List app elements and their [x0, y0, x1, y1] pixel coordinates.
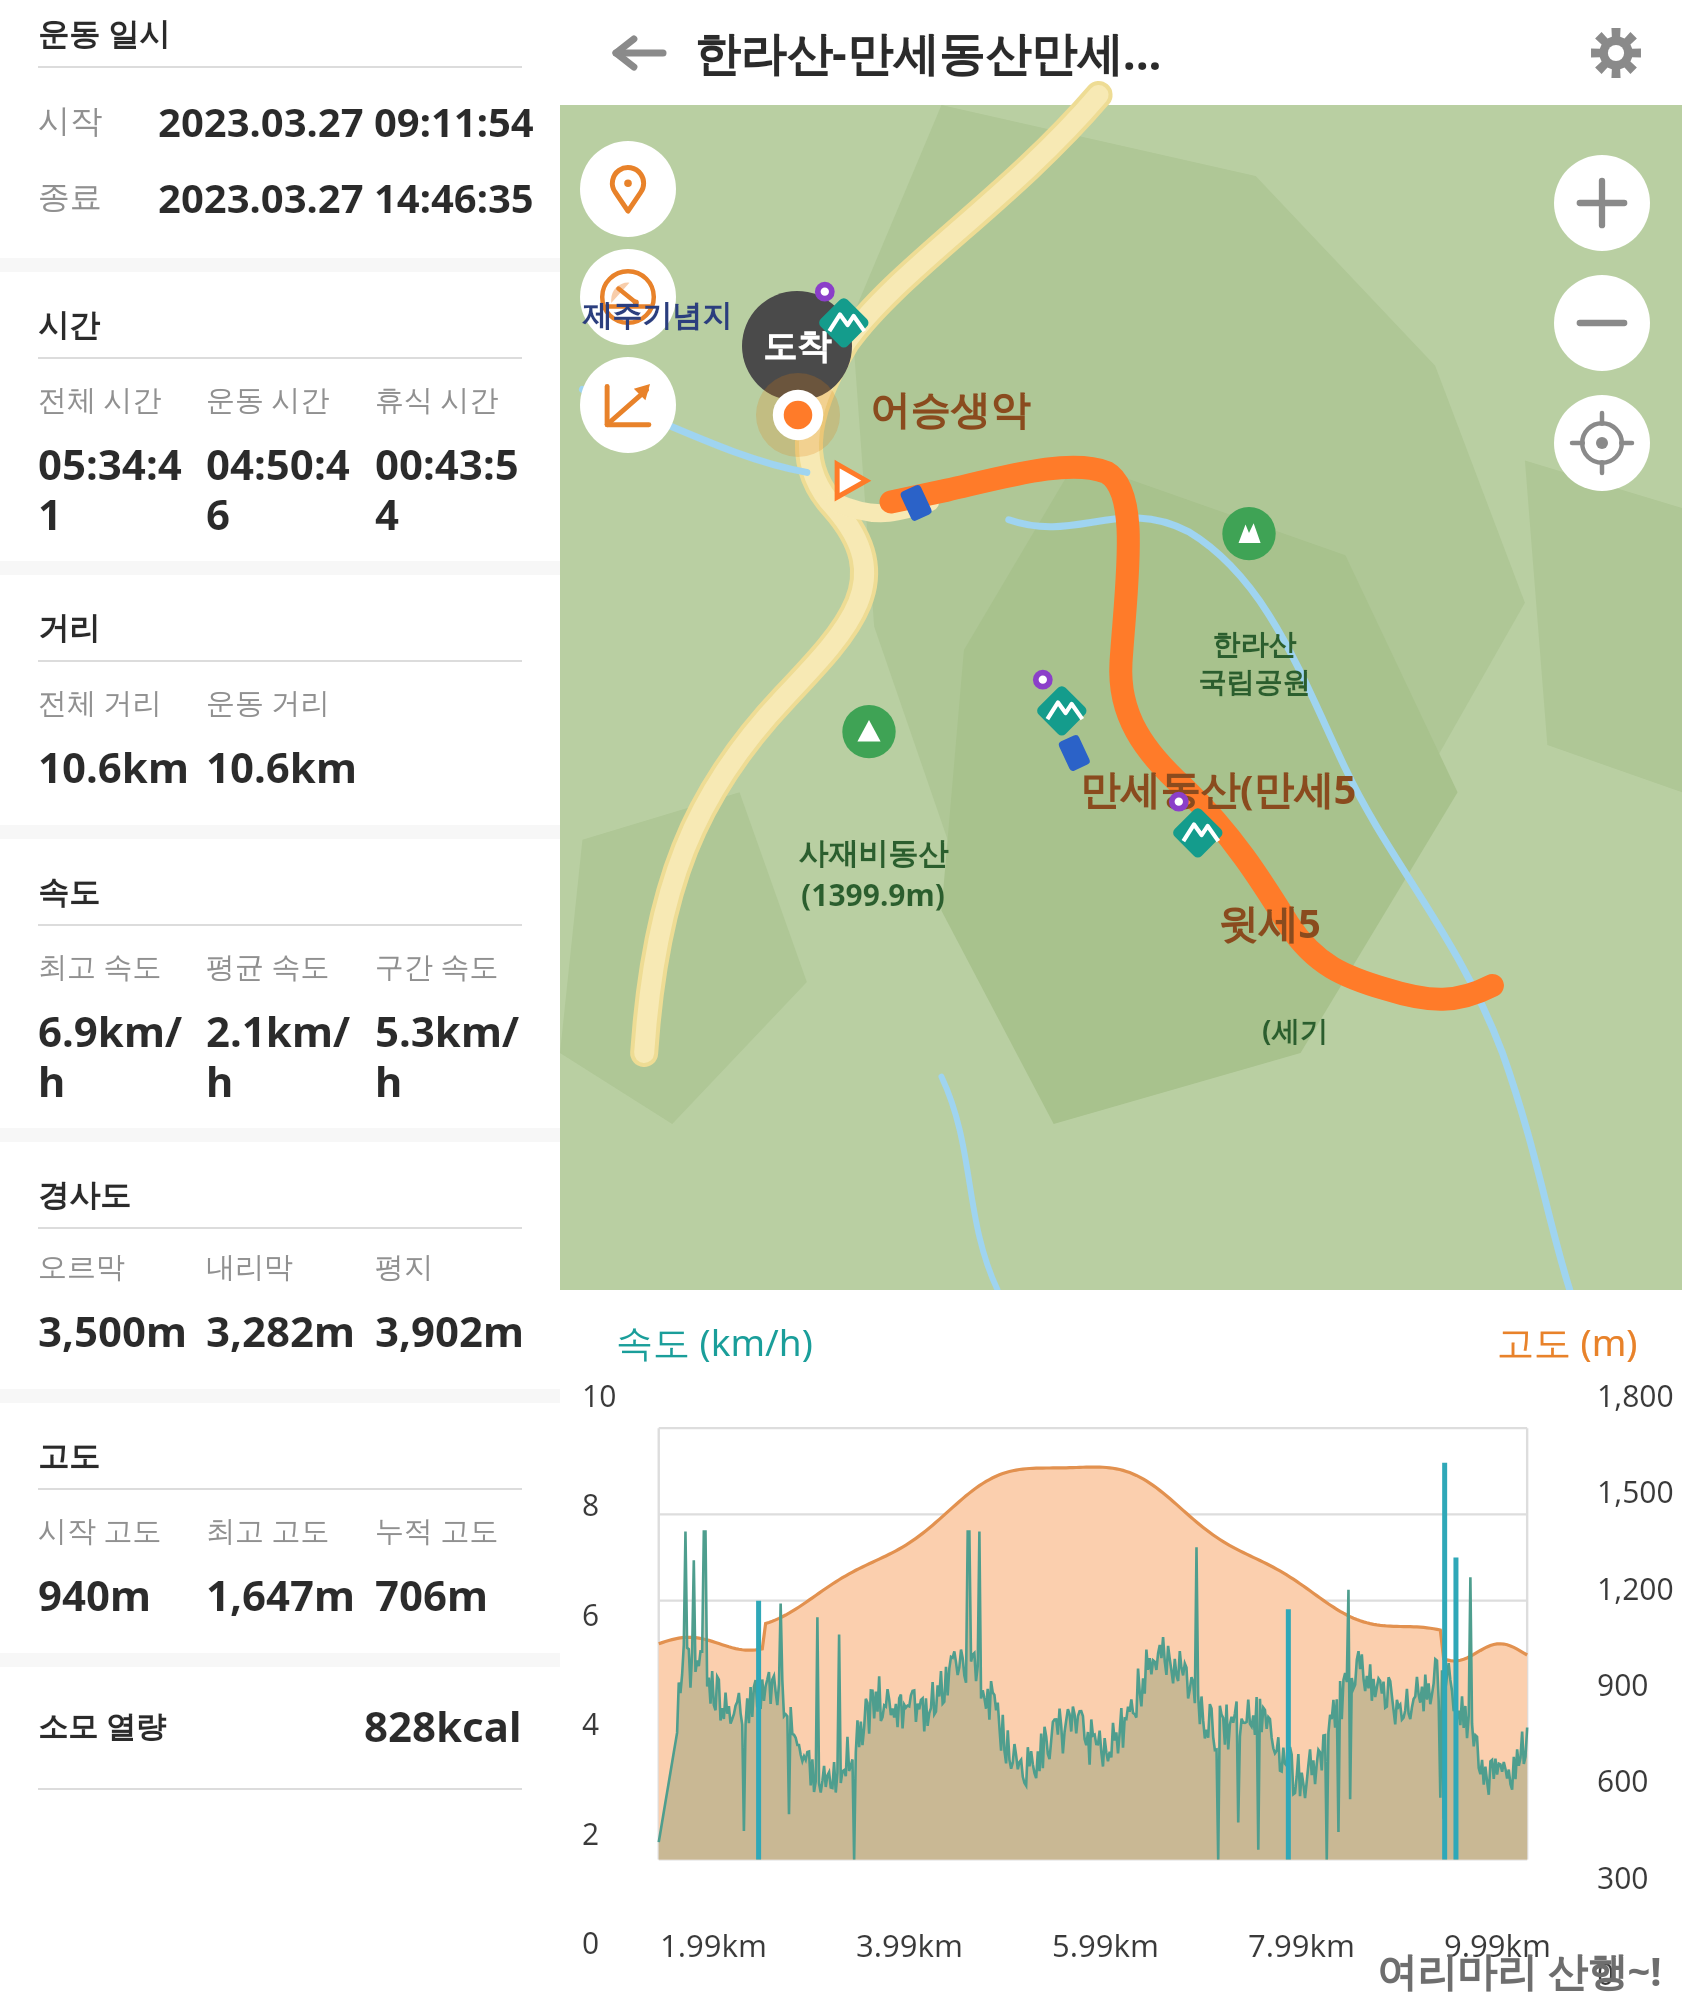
staticText: 9.99km — [1444, 1924, 1552, 1966]
staticText: 휴식 시간 — [375, 379, 499, 419]
staticText: 경사도 — [38, 1176, 131, 1215]
button[interactable]: Zoom in — [1554, 155, 1650, 251]
staticText: 3,500m — [38, 1302, 188, 1359]
staticText: 5.99km — [1052, 1924, 1160, 1966]
staticText: 어승생악 — [870, 385, 1030, 435]
staticText: 속도 — [38, 873, 100, 912]
staticText: 6 — [582, 1594, 600, 1635]
staticText: 오르막 — [38, 1249, 125, 1286]
staticText: 고도 (m) — [1497, 1316, 1638, 1367]
staticText: 6.9km/h — [38, 1002, 200, 1110]
staticText: 내리막 — [206, 1249, 293, 1286]
staticText: 1,800 — [1597, 1375, 1674, 1416]
staticText: 940m — [38, 1566, 152, 1623]
staticText: 04:50:46 — [206, 435, 369, 543]
staticText: 3,902m — [375, 1302, 525, 1359]
staticText: 8 — [582, 1484, 600, 1525]
staticText: 전체 거리 — [38, 682, 162, 722]
staticText: 10 — [582, 1375, 617, 1416]
button[interactable]: Marker — [580, 141, 676, 237]
staticText: 만세동산(만세5 — [1080, 761, 1357, 816]
staticText: 도착 — [763, 325, 831, 368]
button[interactable]: Zoom out — [1554, 275, 1650, 371]
staticText: 706m — [375, 1566, 489, 1623]
staticText: 시간 — [38, 306, 100, 345]
staticText: 2.1km/h — [206, 1002, 369, 1110]
staticText: 윗세5 — [1218, 895, 1321, 950]
staticText: 한라산 국립공원 — [1198, 627, 1310, 701]
staticText: 05:34:41 — [38, 435, 200, 543]
staticText: 거리 — [38, 609, 100, 648]
staticText: 900 — [1597, 1664, 1649, 1705]
staticText: 운동 일시 — [38, 12, 171, 54]
staticText: 평지 — [375, 1249, 433, 1286]
staticText: 평균 속도 — [206, 946, 330, 986]
staticText: 운동 거리 — [206, 682, 330, 722]
staticText: 1,647m — [206, 1566, 356, 1623]
staticText: 1,500 — [1597, 1471, 1674, 1512]
staticText: 828kcal — [364, 1697, 522, 1754]
staticText: 4 — [582, 1703, 600, 1744]
staticText: 2023.03.27 09:11:54 — [158, 94, 534, 148]
staticText: 시작 — [38, 101, 158, 141]
staticText: 누적 고도 — [375, 1510, 499, 1550]
staticText: 소모 열량 — [38, 1705, 166, 1746]
staticText: 2023.03.27 14:46:35 — [158, 170, 534, 224]
staticText: 제주기념지 — [582, 297, 732, 335]
staticText: 2 — [582, 1813, 600, 1854]
staticText: 5.3km/h — [375, 1002, 538, 1110]
button[interactable]: Speed — [580, 249, 676, 345]
staticText: 구간 속도 — [375, 946, 499, 986]
staticText: 300 — [1597, 1857, 1649, 1898]
staticText: 여리마리 산행~! — [1377, 1943, 1662, 1998]
staticText: 1,200 — [1597, 1568, 1674, 1609]
button[interactable]: Settings — [1574, 11, 1658, 95]
staticText: 0 — [1597, 1953, 1615, 1994]
button[interactable]: Slope — [580, 357, 676, 453]
staticText: 최고 고도 — [206, 1510, 330, 1550]
staticText: 한라산-만세동산만세... — [694, 21, 1162, 84]
staticText: 최고 속도 — [38, 946, 162, 986]
staticText: 0 — [582, 1922, 600, 1963]
staticText: 사재비동산 (1399.9m) — [798, 835, 948, 915]
staticText: 시작 고도 — [38, 1510, 162, 1550]
staticText: 10.6km — [206, 738, 357, 795]
staticText: 전체 시간 — [38, 379, 162, 419]
staticText: 7.99km — [1248, 1924, 1356, 1966]
staticText: 3,282m — [206, 1302, 356, 1359]
button[interactable]: Back — [594, 10, 680, 96]
staticText: 운동 시간 — [206, 379, 330, 419]
staticText: 1.99km — [660, 1924, 768, 1966]
staticText: 600 — [1597, 1760, 1649, 1801]
staticText: 속도 (km/h) — [616, 1316, 813, 1367]
staticText: 3.99km — [856, 1924, 964, 1966]
button[interactable]: My location — [1554, 395, 1650, 491]
staticText: 고도 — [38, 1437, 100, 1476]
staticText: 종료 — [38, 177, 158, 217]
staticText: (세기 — [1262, 1011, 1328, 1049]
staticText: 10.6km — [38, 738, 189, 795]
staticText: 00:43:54 — [375, 435, 538, 543]
